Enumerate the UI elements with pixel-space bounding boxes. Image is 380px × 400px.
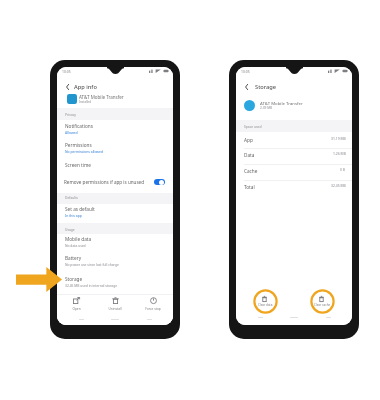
staticText: Remove permissions if app is unused [64, 179, 145, 185]
button[interactable]: Screen time [57, 159, 173, 176]
button[interactable]: AT&T Mobile Transfer [236, 94, 352, 112]
staticText: Notifications [65, 123, 93, 129]
staticText: 2.39 MB [260, 106, 273, 110]
staticText: Defaults [65, 195, 78, 199]
staticText: App info [74, 83, 97, 91]
staticText: 1.26 MB [333, 151, 346, 156]
button[interactable]: Uninstall [98, 297, 132, 314]
button[interactable]: Battery [57, 253, 173, 273]
staticText: AT&T Mobile Transfer [260, 100, 303, 106]
staticText: No power use since last full charge [65, 262, 119, 266]
button[interactable]: Data [236, 148, 352, 164]
staticText: In this app [65, 213, 82, 218]
button[interactable]: Force stop [136, 297, 170, 314]
staticText: 31.19 MB [331, 136, 346, 141]
button[interactable]: Total [236, 180, 352, 196]
button[interactable]: Back [61, 81, 73, 93]
staticText: No permissions allowed [65, 149, 104, 154]
staticText: App [244, 137, 253, 143]
staticText: Screen time [65, 162, 91, 168]
button[interactable]: Notifications [57, 120, 173, 139]
staticText: Set as default [65, 206, 95, 212]
staticText: 10:05 [241, 69, 250, 74]
staticText: Permissions [65, 142, 92, 148]
staticText: Installed [79, 100, 92, 104]
staticText: Data [244, 152, 255, 158]
staticText: 32.45 MB [331, 183, 346, 188]
button[interactable]: App [236, 133, 352, 149]
staticText: Mobile data [65, 236, 92, 242]
button[interactable]: Remove permissions if app is unused [57, 176, 173, 193]
staticText: Allowed [65, 130, 78, 135]
button[interactable]: Set as default [57, 204, 173, 223]
staticText: Force stop [145, 307, 161, 311]
button[interactable]: Clear data [253, 289, 278, 314]
staticText: Privacy [65, 112, 76, 116]
staticText: No data used [65, 243, 86, 247]
staticText: Clear cache [314, 303, 331, 307]
button[interactable]: Remove permissions if app is unused [154, 179, 165, 185]
staticText: AT&T Mobile Transfer [79, 94, 124, 100]
staticText: 10:05 [62, 69, 71, 74]
staticText: Clear data [258, 303, 273, 307]
staticText: 0 B [340, 167, 346, 172]
button[interactable]: AT&T Mobile Transfer [57, 91, 173, 108]
staticText: Storage [65, 276, 83, 282]
button[interactable]: Cache [236, 164, 352, 180]
staticText: Cache [244, 168, 258, 174]
staticText: Open [72, 307, 81, 311]
staticText: Usage [65, 227, 75, 231]
button[interactable]: Clear cache [310, 289, 335, 314]
button[interactable]: Open [59, 297, 93, 314]
button[interactable]: Mobile data [57, 234, 173, 253]
button[interactable]: Back [240, 81, 252, 93]
staticText: Space used [244, 124, 262, 128]
staticText: Storage [255, 83, 277, 91]
staticText: Total [244, 184, 255, 190]
staticText: 32.45 MB used in internal storage [65, 283, 118, 287]
button[interactable]: Storage [57, 273, 173, 293]
button[interactable]: Permissions [57, 139, 173, 159]
staticText: Uninstall [108, 307, 122, 311]
staticText: Battery [65, 255, 82, 261]
